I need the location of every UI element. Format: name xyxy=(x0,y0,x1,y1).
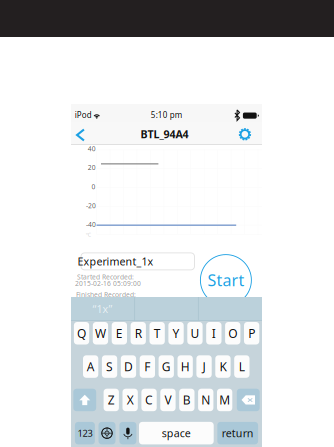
button[interactable]: G xyxy=(159,355,174,378)
staticText: 123 xyxy=(77,427,92,439)
staticText: U xyxy=(190,325,199,341)
button[interactable]: B xyxy=(179,389,194,411)
button[interactable]: Q xyxy=(74,322,89,344)
staticText: T xyxy=(154,325,161,341)
button[interactable]: S xyxy=(102,355,117,378)
staticText: M xyxy=(219,392,230,408)
staticText: -20 xyxy=(86,201,96,210)
staticText: E xyxy=(116,325,123,341)
button[interactable]: R xyxy=(131,322,146,344)
staticText: space xyxy=(162,426,191,440)
staticText: F xyxy=(144,359,150,374)
button[interactable]: return xyxy=(217,422,258,444)
staticText: “1x” xyxy=(92,302,112,316)
staticText: A xyxy=(87,359,95,374)
staticText: W xyxy=(95,325,106,341)
staticText: iPod xyxy=(75,109,92,120)
button[interactable]: V xyxy=(160,389,176,411)
staticText: Start xyxy=(207,269,244,291)
button[interactable]: Z xyxy=(104,389,119,411)
button[interactable]: N xyxy=(198,389,213,411)
button[interactable]: M xyxy=(217,389,232,411)
staticText: I xyxy=(212,325,216,341)
staticText: 5:10 pm xyxy=(151,109,182,120)
staticText: X xyxy=(127,392,134,408)
button[interactable]: Y xyxy=(168,322,184,344)
button[interactable]: O xyxy=(225,322,240,344)
staticText: G xyxy=(162,359,171,374)
button[interactable]: F xyxy=(140,355,155,378)
staticText: H xyxy=(181,359,190,374)
staticText: D xyxy=(124,359,133,374)
button[interactable]: Start xyxy=(200,255,251,306)
staticText: Q xyxy=(77,325,86,341)
button[interactable]: Next keyboard xyxy=(98,422,115,444)
button[interactable]: D xyxy=(121,355,136,378)
button[interactable]: A xyxy=(83,355,98,378)
button[interactable]: C xyxy=(141,389,157,411)
staticText: Y xyxy=(173,325,180,341)
button[interactable]: space xyxy=(139,422,214,444)
button[interactable]: H xyxy=(177,355,193,378)
staticText: S xyxy=(106,359,113,374)
staticText: L xyxy=(239,359,245,374)
button[interactable]: Dictation xyxy=(119,422,136,444)
button[interactable]: K xyxy=(215,355,231,378)
staticText: 20 xyxy=(88,163,96,172)
staticText: 40 xyxy=(88,144,96,153)
button[interactable]: I xyxy=(206,322,221,344)
button[interactable]: E xyxy=(112,322,127,344)
staticText: return xyxy=(222,426,254,440)
staticText: 0 xyxy=(91,182,95,191)
staticText: °C xyxy=(86,231,91,238)
staticText: -40 xyxy=(86,220,96,229)
staticText: V xyxy=(164,392,171,408)
button[interactable]: T xyxy=(149,322,165,344)
staticText: C xyxy=(145,392,153,408)
button[interactable]: 123 xyxy=(75,422,95,444)
staticText: Experiment_1x xyxy=(77,254,153,268)
staticText: B xyxy=(183,392,191,408)
button[interactable]: Delete xyxy=(237,389,260,411)
button[interactable]: U xyxy=(187,322,203,344)
staticText: O xyxy=(228,325,237,341)
button[interactable]: X xyxy=(122,389,138,411)
button[interactable]: Shift xyxy=(73,389,96,411)
staticText: BTL_94A4 xyxy=(140,127,188,141)
button[interactable]: L xyxy=(234,355,249,378)
button[interactable]: Settings xyxy=(233,124,257,145)
button[interactable]: P xyxy=(244,322,259,344)
button[interactable]: Back xyxy=(68,124,93,146)
staticText: Z xyxy=(108,392,115,408)
staticText: R xyxy=(135,325,142,341)
button[interactable]: J xyxy=(196,355,212,378)
button[interactable]: W xyxy=(93,322,108,344)
staticText: P xyxy=(248,325,255,341)
staticText: J xyxy=(203,359,206,374)
staticText: N xyxy=(201,392,210,408)
staticText: Finished Recorded: xyxy=(76,290,136,299)
staticText: Started Recorded: xyxy=(77,272,134,281)
staticText: 2015-02-16 05:09:00 xyxy=(75,279,141,288)
staticText: K xyxy=(219,359,226,374)
